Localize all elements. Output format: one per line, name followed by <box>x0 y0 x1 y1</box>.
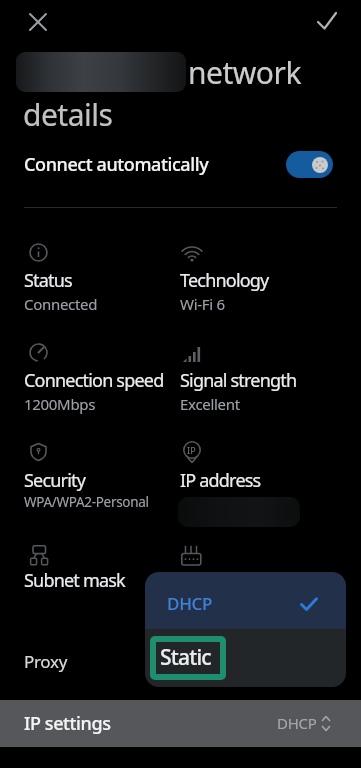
staticText: WPA/WPA2-Personal <box>24 493 149 511</box>
staticText: Connected <box>24 294 98 314</box>
staticText: Static <box>160 643 211 672</box>
staticText: network <box>188 52 301 93</box>
staticText: Excellent <box>180 394 240 414</box>
button[interactable]: Static <box>145 629 346 687</box>
staticText: Connect automatically <box>24 152 209 177</box>
button[interactable]: IP settings <box>0 700 361 747</box>
staticText: Wi-Fi 6 <box>180 294 225 314</box>
staticText: IP address <box>180 468 261 493</box>
staticText: IP <box>187 444 196 456</box>
staticText: Subnet mask <box>24 568 125 593</box>
button[interactable] <box>22 6 54 38</box>
staticText: DHCP <box>277 713 317 733</box>
staticText: Status <box>24 268 72 293</box>
staticText: Technology <box>180 268 269 293</box>
staticText: Proxy <box>24 650 68 673</box>
staticText: Connection speed <box>24 368 164 393</box>
staticText: DHCP <box>167 592 213 615</box>
button[interactable] <box>286 151 333 178</box>
staticText: 1200Mbps <box>24 394 96 414</box>
button[interactable] <box>311 5 343 37</box>
staticText: IP settings <box>24 711 111 736</box>
staticText: details <box>23 94 113 135</box>
staticText: Security <box>24 468 86 493</box>
staticText: Signal strength <box>180 368 297 393</box>
button[interactable]: DHCP <box>145 572 346 629</box>
